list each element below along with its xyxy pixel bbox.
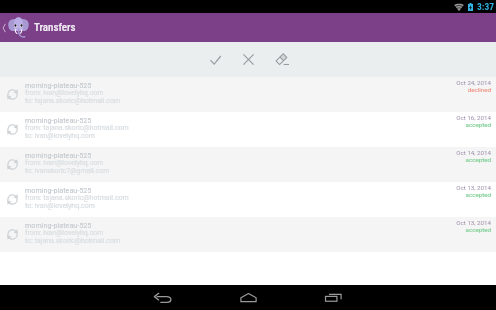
button[interactable]: morning-plateau-525 (0, 217, 496, 252)
staticText: morning-plateau-525 (25, 151, 92, 159)
staticText: to: ivan@lovelyhq.com (25, 202, 95, 210)
staticText: from: ivan@lovelyhq.com (25, 229, 104, 237)
staticText: from: tajana.skoric@hotmail.com (25, 194, 129, 202)
button[interactable]: Back (145, 285, 181, 310)
staticText: to: ivanskoric7@gmail.com (25, 167, 110, 175)
button[interactable]: Recents (315, 285, 351, 310)
staticText: Oct 16, 2014 (456, 114, 491, 121)
button[interactable]: Reject (237, 48, 260, 71)
staticText: Oct 13, 2014 (456, 184, 491, 191)
button[interactable]: Accept (204, 48, 227, 71)
button[interactable]: Home (230, 285, 266, 310)
button[interactable]: morning-plateau-525 (0, 182, 496, 217)
staticText: morning-plateau-525 (25, 186, 92, 194)
staticText: to: tajana.skoric@hotmail.com (25, 237, 121, 245)
staticText: morning-plateau-525 (25, 81, 92, 89)
staticText: from: ivan@lovelyhq.com (25, 159, 104, 167)
staticText: Oct 24, 2014 (456, 79, 491, 86)
staticText: morning-plateau-525 (25, 116, 92, 124)
staticText: to: ivan@lovelyhq.com (25, 132, 95, 140)
button[interactable]: morning-plateau-525 (0, 112, 496, 147)
staticText: accepted (465, 191, 491, 198)
staticText: from: tajana.skoric@hotmail.com (25, 124, 129, 132)
staticText: accepted (465, 226, 491, 233)
staticText: morning-plateau-525 (25, 221, 92, 229)
button[interactable]: Transfers (0, 13, 496, 42)
staticText: Oct 13, 2014 (456, 219, 491, 226)
button[interactable]: Clear (270, 48, 293, 71)
button[interactable]: morning-plateau-525 (0, 147, 496, 182)
staticText: accepted (465, 156, 491, 163)
staticText: accepted (465, 121, 491, 128)
staticText: Oct 14, 2014 (456, 149, 491, 156)
staticText: declined (467, 86, 491, 93)
staticText: 3:37 (477, 1, 495, 12)
button[interactable]: morning-plateau-525 (0, 77, 496, 112)
staticText: Transfers (34, 21, 76, 34)
staticText: to: tajana.skoric@hotmail.com (25, 97, 121, 105)
staticText: from: ivan@lovelyhq.com (25, 89, 104, 97)
